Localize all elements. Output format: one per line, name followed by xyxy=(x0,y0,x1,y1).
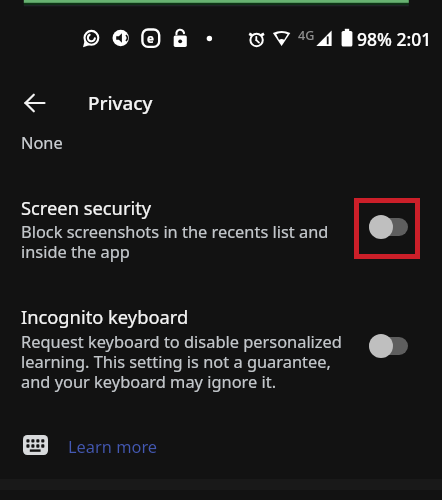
staticText: Block screenshots in the recents list an… xyxy=(21,220,351,263)
button[interactable]: Incognito keyboard xyxy=(0,292,442,400)
staticText: Learn more xyxy=(68,435,158,457)
staticText: 98% 2:01 xyxy=(357,27,432,51)
button[interactable] xyxy=(366,334,410,358)
staticText: None xyxy=(21,131,63,153)
button[interactable]: Back xyxy=(21,89,49,117)
staticText: Privacy xyxy=(88,90,153,116)
staticText: e xyxy=(147,31,154,47)
button[interactable]: Screen security xyxy=(0,182,442,270)
button[interactable] xyxy=(366,215,410,239)
staticText: Screen security xyxy=(21,195,152,220)
staticText: Request keyboard to disable personalized… xyxy=(21,330,351,393)
button[interactable]: Learn more xyxy=(0,430,442,462)
staticText: 4G xyxy=(298,27,315,44)
staticText: Incognito keyboard xyxy=(21,304,189,329)
